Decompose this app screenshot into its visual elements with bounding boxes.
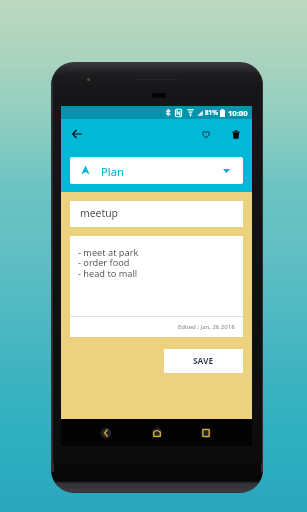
staticText: SAVE (193, 355, 214, 366)
staticText: 81% (205, 108, 218, 117)
button[interactable]: Delete (225, 123, 247, 145)
button[interactable]: Plan (70, 157, 243, 184)
button[interactable]: Back (98, 425, 114, 441)
button[interactable]: Recents (198, 425, 214, 441)
staticText: 10:00 (228, 108, 248, 118)
staticText: Edited : Jan, 26 2018 (178, 323, 235, 331)
staticText: Plan (101, 164, 124, 179)
staticText: meetup (80, 206, 118, 220)
button[interactable]: Favorite (195, 123, 217, 145)
button[interactable]: Back (65, 122, 89, 146)
staticText: - meet at park - order food - head to ma… (78, 246, 139, 280)
button[interactable]: SAVE (164, 349, 243, 373)
button[interactable]: Home (149, 425, 165, 441)
